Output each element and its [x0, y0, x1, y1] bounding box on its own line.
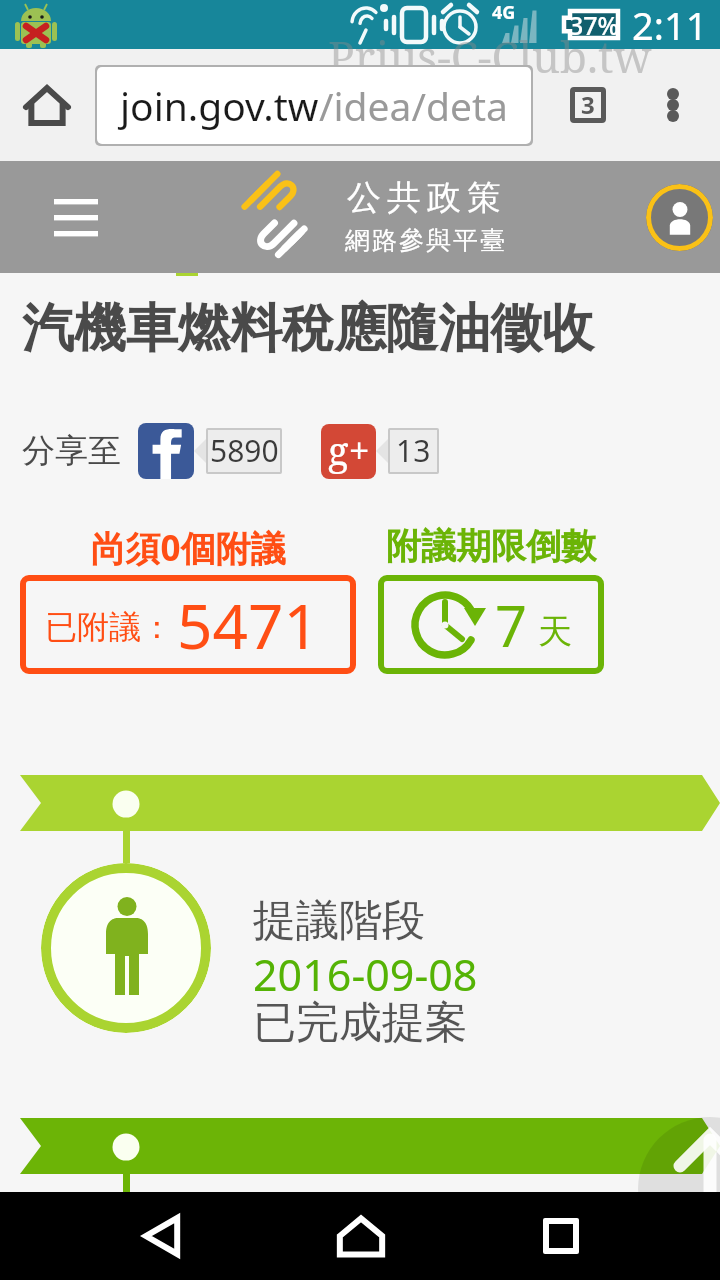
button[interactable]: 13: [388, 428, 439, 474]
staticText: join.gov.tw: [120, 79, 319, 132]
button[interactable]: Back: [118, 1192, 206, 1280]
button[interactable]: Recent apps: [517, 1192, 605, 1280]
staticText: /idea/deta: [319, 79, 508, 132]
staticText: 37%: [569, 8, 619, 42]
button[interactable]: Menu: [44, 185, 108, 249]
staticText: 附議期限倒數: [378, 524, 604, 568]
staticText: 提議階段: [253, 894, 425, 948]
staticText: 13: [396, 430, 431, 471]
button[interactable]: Share on Google Plus: [321, 424, 376, 479]
staticText: 尚須0個附議: [20, 524, 356, 572]
button[interactable]: More options: [638, 70, 708, 140]
button[interactable]: Account: [646, 184, 713, 251]
staticText: 汽機車燃料稅應隨油徵收: [22, 296, 594, 362]
staticText: 已附議：: [45, 607, 173, 647]
staticText: 5471: [177, 583, 319, 667]
staticText: 5890: [210, 430, 279, 471]
staticText: 2:11: [632, 0, 708, 48]
staticText: 公共政策: [344, 176, 504, 219]
button[interactable]: Share on Facebook: [138, 423, 194, 479]
button[interactable]: 已附議：: [20, 575, 356, 674]
button[interactable]: Home: [12, 70, 82, 140]
button[interactable]: 5890: [206, 428, 282, 474]
button[interactable]: Tabs: [553, 70, 623, 140]
staticText: 分享至: [22, 430, 121, 472]
staticText: Prius-C-Club.tw: [328, 26, 652, 86]
button[interactable]: 7: [378, 575, 604, 674]
button[interactable]: join.gov.tw: [97, 67, 531, 144]
staticText: 已完成提案: [253, 996, 468, 1050]
button[interactable]: Scroll to top: [638, 1117, 720, 1261]
staticText: 天: [538, 610, 572, 653]
button[interactable]: Home: [317, 1192, 405, 1280]
staticText: 2016-09-08: [253, 945, 478, 1004]
staticText: 7: [495, 587, 528, 663]
staticText: g+: [328, 424, 370, 476]
staticText: 3: [581, 88, 595, 121]
staticText: 網路參與平臺: [344, 225, 506, 256]
staticText: 4G: [492, 0, 516, 25]
